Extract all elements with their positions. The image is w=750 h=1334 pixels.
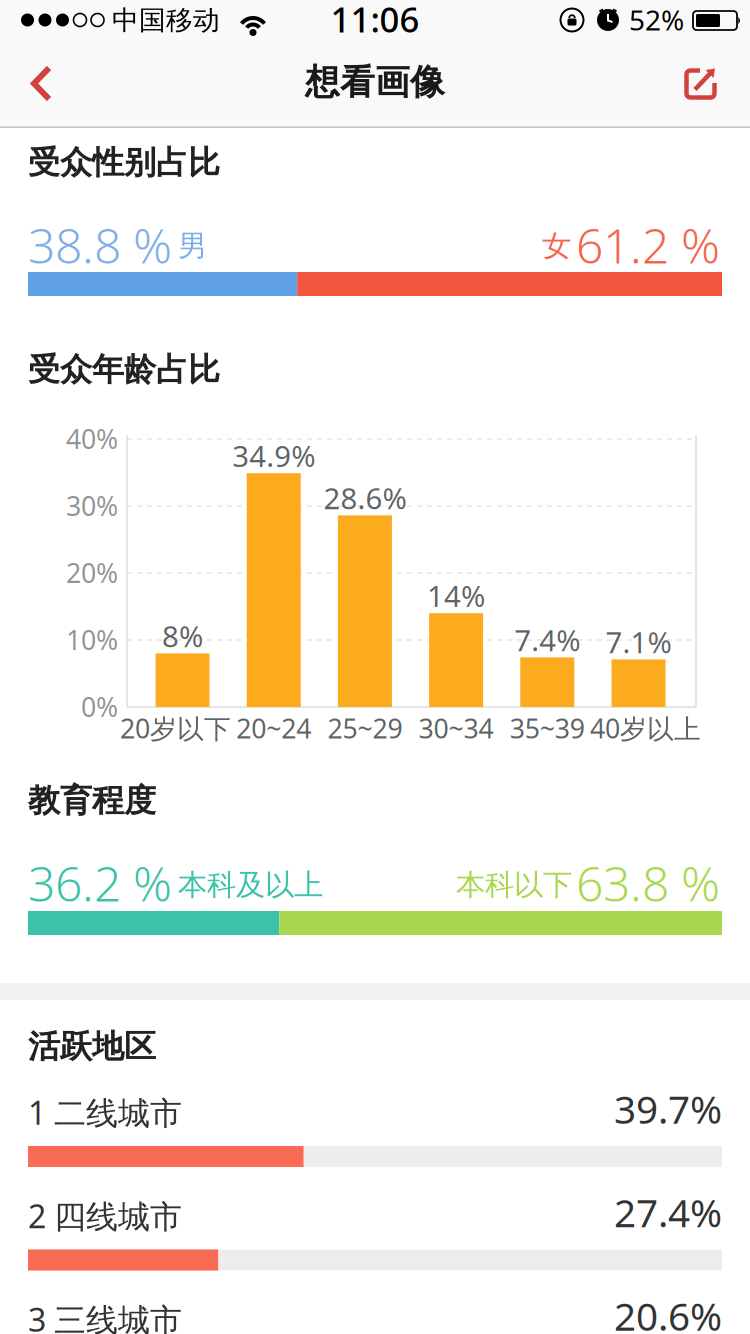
staticText: 中国移动 xyxy=(112,4,220,37)
staticText: 30~34 xyxy=(419,710,494,746)
staticText: 52% xyxy=(629,1,684,38)
staticText: 34.9% xyxy=(232,436,315,475)
button[interactable] xyxy=(676,60,725,108)
staticText: 35~39 xyxy=(510,710,585,746)
staticText: 3 三线城市 xyxy=(28,1298,182,1334)
staticText: 20~24 xyxy=(236,710,311,746)
staticText: 40% xyxy=(66,421,118,456)
staticText: 20.6% xyxy=(614,1290,722,1334)
staticText: 61.2 % xyxy=(576,213,720,277)
button[interactable] xyxy=(0,57,72,110)
staticText: 25~29 xyxy=(327,710,402,746)
staticText: 受众性别占比 xyxy=(28,143,220,182)
staticText: 7.1% xyxy=(605,622,671,661)
staticText: 女 xyxy=(542,228,571,264)
staticText: 7.4% xyxy=(514,620,580,659)
staticText: 20% xyxy=(66,555,118,590)
staticText: 36.2 % xyxy=(28,851,172,915)
staticText: 27.4% xyxy=(614,1186,722,1238)
staticText: 本科以下 xyxy=(456,867,572,903)
staticText: 10% xyxy=(66,622,118,657)
staticText: 2 四线城市 xyxy=(28,1194,182,1237)
staticText: 30% xyxy=(66,488,118,523)
staticText: 教育程度 xyxy=(28,781,156,820)
staticText: 活跃地区 xyxy=(28,1027,156,1066)
staticText: 14% xyxy=(427,576,485,615)
staticText: 40岁以上 xyxy=(590,710,701,746)
staticText: 0% xyxy=(81,689,118,724)
staticText: 39.7% xyxy=(614,1083,722,1134)
staticText: 男 xyxy=(178,228,207,264)
staticText: 8% xyxy=(162,616,203,655)
staticText: 63.8 % xyxy=(576,851,720,915)
staticText: 38.8 % xyxy=(28,213,172,277)
staticText: 11:06 xyxy=(330,0,419,42)
staticText: 28.6% xyxy=(323,478,406,517)
staticText: 20岁以下 xyxy=(120,710,231,746)
staticText: 受众年龄占比 xyxy=(28,350,220,389)
staticText: 想看画像 xyxy=(305,61,445,104)
staticText: 本科及以上 xyxy=(178,867,323,903)
staticText: 1 二线城市 xyxy=(28,1091,182,1133)
